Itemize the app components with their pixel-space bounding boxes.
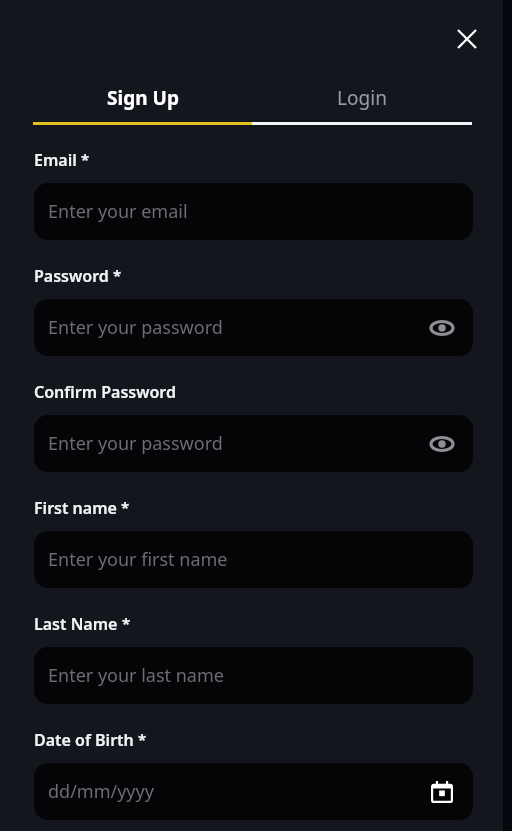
staticText: Login	[337, 85, 387, 111]
button[interactable]: Close	[445, 17, 489, 61]
staticText: Email	[34, 149, 77, 171]
staticText: *	[113, 265, 122, 285]
button[interactable]: Pick date	[425, 775, 459, 809]
button[interactable]: Toggle password visibility	[425, 427, 459, 461]
staticText: Enter your last name	[48, 663, 224, 688]
staticText: *	[81, 149, 90, 169]
staticText: *	[138, 729, 147, 749]
staticText: Enter your first name	[48, 547, 228, 572]
button[interactable]: Enter your last name	[34, 647, 473, 704]
staticText: Enter your email	[48, 199, 188, 224]
staticText: *	[122, 613, 131, 633]
button[interactable]: Login	[252, 78, 472, 118]
button[interactable]: Toggle password visibility	[425, 311, 459, 345]
staticText: Password	[34, 265, 109, 287]
button[interactable]: Sign Up	[33, 78, 252, 118]
staticText: Sign Up	[107, 85, 179, 111]
button[interactable]: Enter your password	[34, 415, 473, 472]
staticText: First name	[34, 497, 117, 519]
staticText: Date of Birth	[34, 729, 134, 751]
button[interactable]: Enter your password	[34, 299, 473, 356]
staticText: Enter your password	[48, 315, 223, 340]
button[interactable]: dd/mm/yyyy	[34, 763, 473, 820]
button[interactable]: Enter your email	[34, 183, 473, 240]
staticText: dd/mm/yyyy	[48, 779, 154, 804]
staticText: Last Name	[34, 613, 118, 635]
staticText: Enter your password	[48, 431, 223, 456]
staticText: Confirm Password	[34, 381, 176, 403]
staticText: *	[121, 497, 130, 517]
button[interactable]: Enter your first name	[34, 531, 473, 588]
